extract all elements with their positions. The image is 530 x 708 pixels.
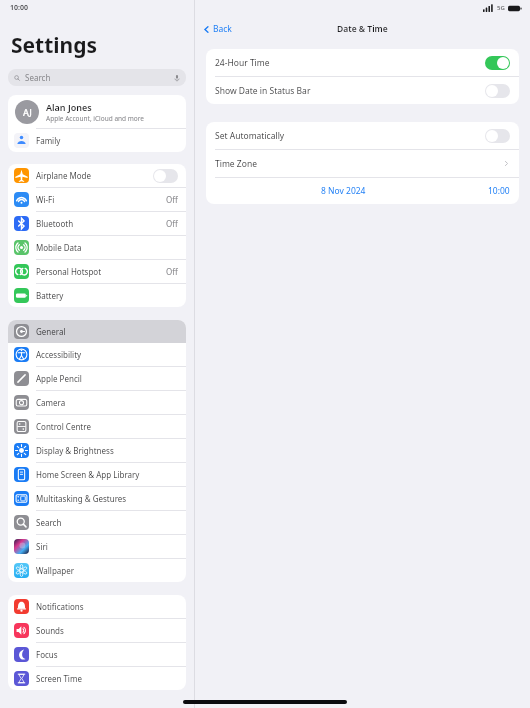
staticText: Time Zone — [215, 158, 257, 170]
staticText: Home Screen & App Library — [36, 469, 140, 480]
button[interactable]: Siri — [8, 535, 186, 559]
staticText: Show Date in Status Bar — [215, 85, 311, 97]
staticText: Family — [36, 135, 61, 146]
button[interactable]: Search — [8, 511, 186, 535]
button[interactable]: Accessibility — [8, 343, 186, 367]
button[interactable]: 24-Hour Time — [485, 56, 510, 70]
button[interactable]: Personal Hotspot — [8, 260, 186, 284]
staticText: Off — [166, 194, 178, 205]
button[interactable]: Airplane Mode — [8, 164, 186, 188]
button[interactable]: Sounds — [8, 619, 186, 643]
button[interactable]: Battery — [8, 284, 186, 307]
button[interactable]: Search — [8, 69, 186, 86]
button[interactable]: Set Automatically — [206, 122, 519, 150]
staticText: Battery — [36, 290, 64, 301]
button[interactable]: Multitasking & Gestures — [8, 487, 186, 511]
staticText: Sounds — [36, 625, 64, 636]
button[interactable]: Apple Pencil — [8, 367, 186, 391]
button[interactable]: 24-Hour Time — [206, 49, 519, 77]
button[interactable]: Airplane Mode — [153, 169, 178, 183]
staticText: Screen Time — [36, 673, 82, 684]
staticText: Control Centre — [36, 421, 91, 432]
staticText: 8 Nov 2024 — [321, 185, 366, 197]
staticText: 24-Hour Time — [215, 57, 270, 69]
staticText: General — [36, 326, 66, 337]
button[interactable]: General — [8, 320, 186, 343]
button[interactable]: Camera — [8, 391, 186, 415]
staticText: Search — [36, 517, 62, 528]
staticText: Personal Hotspot — [36, 266, 102, 277]
button[interactable]: Show Date in Status Bar — [206, 77, 519, 104]
staticText: Back — [213, 23, 232, 35]
staticText: Alan Jones — [46, 101, 92, 113]
button[interactable]: Mobile Data — [8, 236, 186, 260]
staticText: 5G — [497, 4, 505, 12]
button[interactable]: Set Automatically — [485, 129, 510, 143]
button[interactable]: Control Centre — [8, 415, 186, 439]
staticText: AJ — [23, 106, 32, 118]
staticText: Bluetooth — [36, 218, 74, 229]
button[interactable]: Focus — [8, 643, 186, 667]
staticText: Camera — [36, 397, 66, 408]
staticText: Settings — [11, 31, 98, 60]
staticText: Off — [166, 218, 178, 229]
staticText: Date & Time — [337, 23, 388, 35]
button[interactable]: Show Date in Status Bar — [485, 84, 510, 98]
button[interactable]: Wallpaper — [8, 559, 186, 582]
staticText: Notifications — [36, 601, 84, 612]
staticText: Apple Account, iCloud and more — [46, 114, 145, 123]
button[interactable]: Home Screen & App Library — [8, 463, 186, 487]
staticText: Display & Brightness — [36, 445, 114, 456]
button[interactable]: Wi-Fi — [8, 188, 186, 212]
staticText: Off — [166, 266, 178, 277]
staticText: 10:00 — [10, 3, 28, 13]
staticText: Set Automatically — [215, 130, 285, 142]
button[interactable]: Bluetooth — [8, 212, 186, 236]
staticText: Mobile Data — [36, 242, 82, 253]
button[interactable]: Back — [200, 20, 234, 38]
staticText: 10:00 — [488, 185, 510, 197]
staticText: Wi-Fi — [36, 194, 55, 205]
button[interactable]: Family — [8, 129, 186, 152]
button[interactable]: Screen Time — [8, 667, 186, 690]
staticText: Accessibility — [36, 349, 82, 360]
staticText: Airplane Mode — [36, 170, 92, 181]
button[interactable]: Time Zone — [206, 150, 519, 178]
staticText: Multitasking & Gestures — [36, 493, 127, 504]
button[interactable]: AJ — [8, 95, 186, 128]
button[interactable]: Display & Brightness — [8, 439, 186, 463]
staticText: Wallpaper — [36, 565, 75, 576]
staticText: Focus — [36, 649, 58, 660]
staticText: Search — [25, 72, 51, 83]
staticText: Apple Pencil — [36, 373, 82, 384]
staticText: Siri — [36, 541, 48, 552]
button[interactable]: Notifications — [8, 595, 186, 619]
button[interactable]: 8 Nov 2024 — [206, 178, 519, 204]
